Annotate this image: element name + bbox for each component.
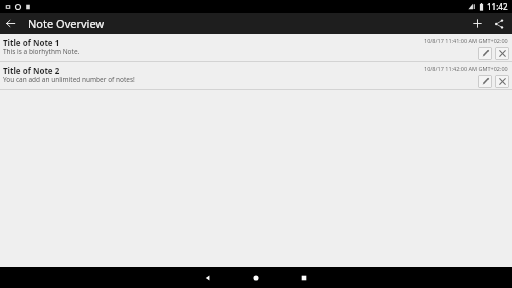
staticText: Title of Note 1	[3, 37, 60, 48]
button[interactable]: Delete note	[495, 47, 509, 60]
button[interactable]: Back	[0, 13, 21, 34]
staticText: 10/8/17 11:42:00 AM GMT+02:00	[424, 65, 508, 72]
button[interactable]: Home	[232, 267, 280, 288]
staticText: You can add an unlimited number of notes…	[3, 75, 135, 84]
staticText: Title of Note 2	[3, 65, 60, 76]
button[interactable]: Edit note	[478, 75, 492, 88]
staticText: 10/8/17 11:41:00 AM GMT+02:00	[424, 37, 508, 44]
button[interactable]: Add note	[467, 13, 488, 34]
button[interactable]: Back	[184, 267, 232, 288]
staticText: Note Overview	[28, 16, 105, 31]
button[interactable]: Share	[488, 13, 509, 34]
button[interactable]: Edit note	[478, 47, 492, 60]
staticText: 11:42	[487, 1, 508, 12]
button[interactable]: Delete note	[495, 75, 509, 88]
button[interactable]: Title of Note 1	[0, 34, 512, 61]
staticText: This is a biorhythm Note.	[3, 47, 80, 56]
button[interactable]: Title of Note 2	[0, 62, 512, 89]
button[interactable]: Recent apps	[280, 267, 328, 288]
